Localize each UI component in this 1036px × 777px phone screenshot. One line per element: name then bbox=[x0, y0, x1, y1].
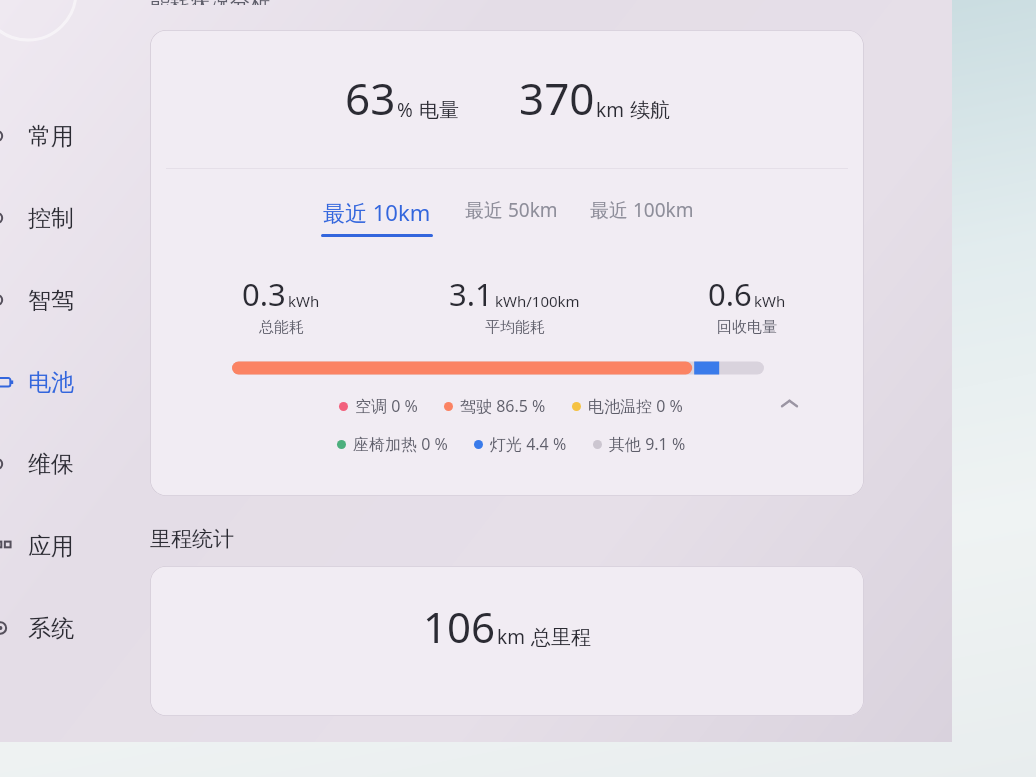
button[interactable]: 最近 100km bbox=[588, 195, 696, 225]
staticText: 电池 bbox=[28, 368, 74, 397]
staticText: kWh/100km bbox=[495, 291, 580, 311]
staticText: 维保 bbox=[28, 450, 74, 479]
button[interactable]: 系统 bbox=[0, 608, 150, 648]
staticText: 里程统计 bbox=[150, 526, 234, 552]
staticText: km bbox=[497, 624, 525, 650]
staticText: 最近 50km bbox=[465, 197, 558, 223]
staticText: 续航 bbox=[630, 98, 670, 123]
staticText: 空调 0 % bbox=[355, 395, 418, 417]
button[interactable]: 63 bbox=[150, 30, 864, 496]
button[interactable]: 电池温控 0 % bbox=[572, 395, 683, 417]
staticText: % bbox=[397, 97, 413, 123]
staticText: 平均能耗 bbox=[485, 318, 545, 337]
staticText: 驾驶 86.5 % bbox=[460, 395, 546, 417]
staticText: 电池温控 0 % bbox=[588, 395, 683, 417]
button[interactable]: 106 bbox=[150, 566, 864, 716]
button[interactable]: 最近 50km bbox=[463, 195, 560, 225]
button[interactable]: 空调 0 % bbox=[339, 395, 418, 417]
staticText: 智驾 bbox=[28, 286, 74, 315]
button[interactable]: 电池 bbox=[0, 362, 150, 402]
staticText: 回收电量 bbox=[717, 318, 777, 337]
staticText: 座椅加热 0 % bbox=[353, 433, 448, 455]
staticText: 控制 bbox=[28, 204, 74, 233]
staticText: 0.3 bbox=[242, 273, 286, 315]
staticText: 电量 bbox=[419, 98, 459, 123]
staticText: 最近 10km bbox=[323, 197, 431, 227]
staticText: kWh bbox=[288, 291, 320, 311]
staticText: 常用 bbox=[28, 122, 74, 151]
button[interactable]: 灯光 4.4 % bbox=[474, 433, 567, 455]
button[interactable]: 其他 9.1 % bbox=[593, 433, 686, 455]
staticText: 能耗状况分析 bbox=[150, 0, 270, 5]
button[interactable]: 维保 bbox=[0, 444, 150, 484]
staticText: 370 bbox=[519, 68, 595, 128]
button[interactable]: 最近 10km bbox=[319, 195, 435, 239]
button[interactable]: 座椅加热 0 % bbox=[337, 433, 448, 455]
staticText: 总里程 bbox=[531, 625, 591, 650]
staticText: kWh bbox=[754, 291, 786, 311]
button[interactable]: 智驾 bbox=[0, 280, 150, 320]
staticText: 系统 bbox=[28, 614, 74, 643]
staticText: 总能耗 bbox=[259, 318, 304, 337]
staticText: 3.1 bbox=[449, 273, 493, 315]
staticText: 应用 bbox=[28, 532, 74, 561]
staticText: 0.6 bbox=[708, 273, 752, 315]
button[interactable]: 常用 bbox=[0, 116, 150, 156]
button[interactable]: 驾驶 86.5 % bbox=[444, 395, 546, 417]
staticText: 灯光 4.4 % bbox=[490, 433, 567, 455]
staticText: km bbox=[596, 97, 624, 123]
button[interactable]: 应用 bbox=[0, 526, 150, 566]
staticText: 其他 9.1 % bbox=[609, 433, 686, 455]
button[interactable]: 收起 bbox=[772, 386, 806, 420]
button[interactable]: 控制 bbox=[0, 198, 150, 238]
staticText: 最近 100km bbox=[590, 197, 694, 223]
staticText: 106 bbox=[423, 598, 496, 655]
staticText: 63 bbox=[345, 68, 396, 128]
